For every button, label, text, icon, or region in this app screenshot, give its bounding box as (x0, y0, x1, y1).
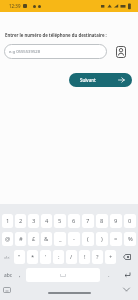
button[interactable]: 5 (54, 214, 66, 228)
staticText: Entrer le numéro de téléphone du destina… (5, 32, 107, 38)
staticText: 4 (45, 217, 49, 225)
button[interactable]: 4 (41, 214, 52, 228)
staticText: Suivant (80, 77, 96, 83)
button[interactable]: + (105, 250, 116, 264)
button[interactable]: _ (54, 232, 66, 246)
staticText: =\< (4, 255, 10, 260)
button[interactable]: ' (40, 250, 51, 264)
button[interactable] (26, 268, 100, 282)
staticText: ( (87, 235, 89, 243)
button[interactable]: e.g 0555539528 (4, 44, 107, 59)
button[interactable]: - (68, 232, 80, 246)
staticText: & (44, 235, 49, 243)
button[interactable]: # (15, 232, 26, 246)
button[interactable]: @ (2, 232, 13, 246)
staticText: @ (5, 235, 11, 243)
button[interactable]: * (27, 250, 38, 264)
staticText: . (108, 271, 110, 279)
staticText: 5 (58, 217, 62, 225)
button[interactable]: , (16, 268, 24, 282)
button[interactable]: . (102, 268, 116, 282)
button[interactable]: & (41, 232, 52, 246)
staticText: ? (96, 253, 99, 261)
button[interactable]: 0 (124, 214, 136, 228)
button[interactable]: ( (82, 232, 94, 246)
button[interactable] (115, 46, 127, 58)
button[interactable]: 8 (96, 214, 108, 228)
button[interactable] (118, 268, 136, 282)
staticText: # (19, 235, 23, 243)
staticText: ! (84, 253, 86, 261)
button[interactable]: ? (92, 250, 103, 264)
staticText: 8 (100, 217, 104, 225)
button[interactable]: £ (28, 232, 39, 246)
staticText: " (18, 253, 21, 261)
staticText: ) (101, 235, 103, 243)
button[interactable]: % (124, 232, 136, 246)
staticText: ' (45, 253, 47, 261)
staticText: £ (32, 235, 36, 243)
button[interactable]: 6 (68, 214, 80, 228)
staticText: 0 (128, 217, 132, 225)
staticText: 12:39 (9, 3, 21, 9)
staticText: = (114, 235, 118, 243)
staticText: 2 (19, 217, 23, 225)
button[interactable]: =\< (2, 250, 12, 264)
staticText: % (128, 235, 133, 243)
button[interactable]: = (110, 232, 122, 246)
button[interactable]: " (14, 250, 25, 264)
button[interactable]: 2 (15, 214, 26, 228)
button[interactable]: ) (96, 232, 108, 246)
staticText: 3 (32, 217, 36, 225)
button[interactable]: 3 (28, 214, 39, 228)
staticText: 9 (114, 217, 118, 225)
button[interactable] (123, 287, 130, 292)
button[interactable]: / (66, 250, 77, 264)
staticText: e.g 0555539528 (9, 49, 41, 55)
button[interactable] (118, 250, 136, 264)
button[interactable]: abc (2, 268, 14, 282)
staticText: * (31, 253, 35, 261)
button[interactable]: Suivant (69, 73, 132, 87)
button[interactable]: 1 (2, 214, 13, 228)
staticText: - (73, 235, 75, 243)
button[interactable]: 7 (82, 214, 94, 228)
button[interactable]: 9 (110, 214, 122, 228)
staticText: : (58, 253, 60, 261)
staticText: 6 (72, 217, 76, 225)
staticText: abc (4, 272, 12, 279)
staticText: 7 (86, 217, 90, 225)
staticText: 1 (6, 217, 10, 225)
staticText: + (109, 253, 113, 261)
button[interactable]: : (53, 250, 64, 264)
staticText: , (19, 271, 21, 279)
button[interactable]: ! (79, 250, 90, 264)
staticText: _ (59, 235, 62, 243)
staticText: / (70, 253, 73, 261)
